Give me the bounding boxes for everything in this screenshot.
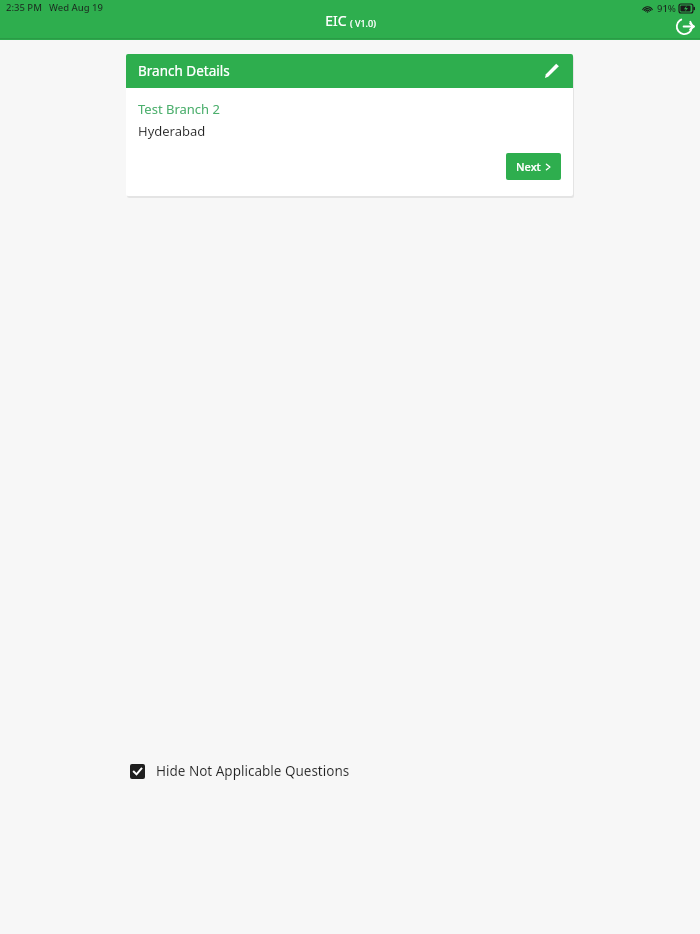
staticText: 91% xyxy=(657,2,676,15)
staticText: Hide Not Applicable Questions xyxy=(156,762,350,780)
staticText: Wed Aug 19 xyxy=(49,1,103,14)
staticText: Test Branch 2 xyxy=(138,100,220,118)
button[interactable]: Edit branch details xyxy=(539,58,565,84)
staticText: Hyderabad xyxy=(138,122,206,140)
button[interactable]: Logout xyxy=(672,13,698,39)
staticText: 2:35 PM xyxy=(6,1,42,14)
staticText: Next xyxy=(516,159,541,174)
staticText: Branch Details xyxy=(138,62,230,80)
button[interactable]: Next xyxy=(506,153,561,180)
staticText: EIC xyxy=(325,11,347,30)
staticText: ( V1.0) xyxy=(350,17,376,29)
button[interactable]: Hide Not Applicable Questions xyxy=(126,758,354,784)
